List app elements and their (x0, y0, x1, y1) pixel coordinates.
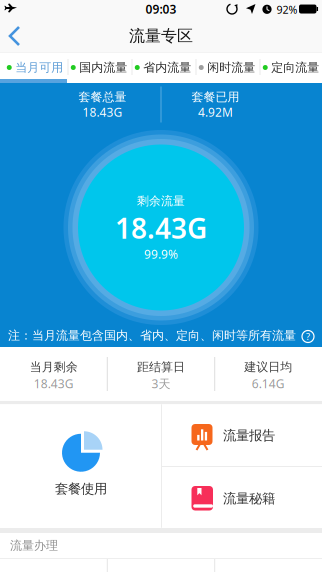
staticText: 建议日均 (244, 360, 292, 374)
staticText: 6.14G (252, 375, 285, 391)
staticText: 18.43G (115, 209, 207, 247)
staticText: 闲时流量 (207, 60, 255, 75)
staticText: 国内流量 (79, 60, 127, 75)
button[interactable]: 流量秘籍 (162, 467, 322, 528)
button[interactable]: Back (5, 23, 31, 49)
staticText: 注：当月流量包含国内、省内、定向、闲时等所有流量 (8, 328, 296, 343)
staticText: 剩余流量 (137, 194, 185, 208)
button[interactable]: 当月可用 (4, 53, 66, 81)
staticText: 99.9% (144, 246, 178, 262)
staticText: 3天 (151, 375, 170, 391)
staticText: ? (306, 330, 310, 343)
staticText: 18.43G (82, 104, 122, 120)
button[interactable]: 流量报告 (162, 404, 322, 467)
button[interactable]: 省内流量 (132, 53, 194, 81)
staticText: 92% (276, 2, 297, 17)
button[interactable]: 国内流量 (68, 53, 130, 81)
staticText: 流量办理 (10, 538, 58, 553)
button[interactable]: 说明 (300, 328, 316, 344)
staticText: 省内流量 (143, 60, 191, 75)
button[interactable]: 套餐使用 (0, 404, 161, 528)
staticText: 套餐使用 (55, 481, 107, 497)
staticText: 18.43G (34, 375, 74, 391)
staticText: 流量报告 (223, 427, 275, 444)
staticText: 流量秘籍 (223, 490, 275, 507)
staticText: 4.92M (198, 104, 233, 120)
button[interactable]: 定向流量 (260, 53, 322, 81)
staticText: 流量专区 (129, 26, 193, 46)
staticText: 当月可用 (15, 60, 63, 75)
staticText: 定向流量 (271, 60, 319, 75)
button[interactable]: 闲时流量 (196, 53, 258, 81)
staticText: 09:03 (145, 1, 176, 17)
staticText: 套餐总量 (78, 90, 126, 104)
staticText: 套餐已用 (191, 90, 239, 104)
staticText: 距结算日 (137, 360, 185, 374)
staticText: 当月剩余 (30, 360, 78, 374)
